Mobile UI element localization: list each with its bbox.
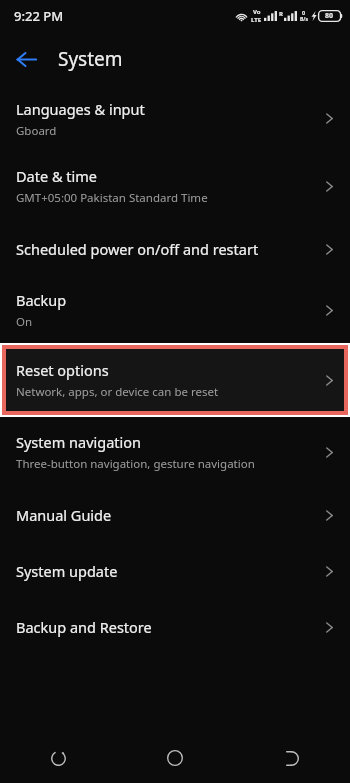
button[interactable]: Date & time — [0, 151, 350, 221]
button[interactable]: Backup and Restore — [0, 599, 350, 655]
staticText: B/s — [300, 16, 308, 23]
button[interactable]: Scheduled power on/off and restart — [0, 221, 350, 277]
staticText: Reset options — [16, 360, 109, 380]
staticText: Three-button navigation, gesture navigat… — [16, 456, 255, 472]
staticText: GMT+05:00 Pakistan Standard Time — [16, 190, 208, 206]
staticText: 9:22 PM — [14, 7, 64, 25]
button[interactable]: Back — [233, 733, 350, 783]
staticText: Scheduled power on/off and restart — [16, 239, 259, 259]
button[interactable]: Back — [5, 38, 47, 80]
staticText: Languages & input — [16, 99, 145, 119]
staticText: Manual Guide — [16, 505, 112, 525]
staticText: System navigation — [16, 432, 142, 452]
button[interactable]: System update — [0, 543, 350, 599]
button[interactable]: Manual Guide — [0, 487, 350, 543]
button[interactable]: Recents — [0, 733, 116, 783]
button[interactable]: Languages & input — [0, 86, 350, 151]
button[interactable]: System navigation — [0, 417, 350, 487]
staticText: Gboard — [16, 123, 57, 139]
staticText: System — [58, 46, 123, 72]
staticText: Backup and Restore — [16, 617, 152, 637]
button[interactable]: Backup — [0, 277, 350, 343]
staticText: 80 — [325, 11, 334, 21]
button[interactable]: Reset options — [6, 349, 344, 411]
staticText: Backup — [16, 290, 67, 310]
staticText: Date & time — [16, 166, 97, 186]
staticText: LTE — [251, 16, 262, 24]
staticText: Vo — [253, 8, 261, 16]
staticText: System update — [16, 561, 118, 581]
staticText: Network, apps, or device can be reset — [16, 384, 219, 400]
button[interactable]: Home — [116, 733, 233, 783]
staticText: On — [16, 314, 33, 330]
staticText: R — [279, 10, 283, 18]
staticText: 0 — [302, 9, 306, 16]
